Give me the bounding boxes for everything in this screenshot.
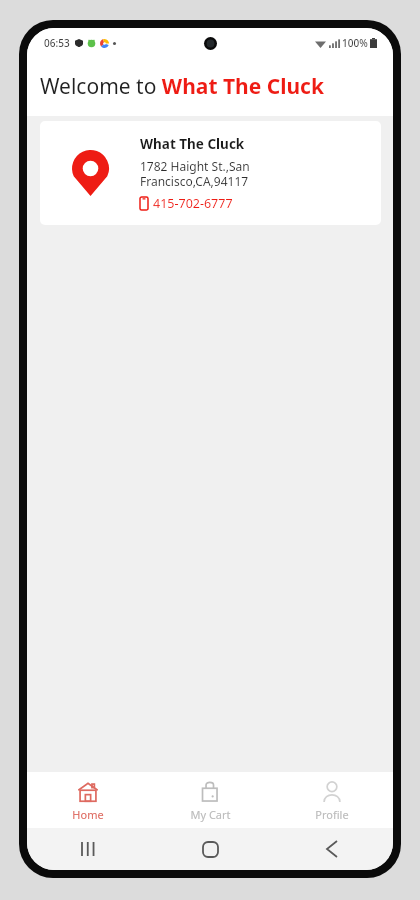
button[interactable]: 415-702-6777 [140,195,233,212]
button[interactable]: What The Cluck [40,121,381,225]
other: Recents [81,842,96,856]
other: Home [77,781,99,803]
staticText: My Cart [190,807,231,822]
staticText: 1782 Haight St.,San Francisco,CA,94117 [140,158,250,189]
other: Profile [321,781,343,803]
other: Back [327,841,337,857]
staticText: Welcome to What The Cluck [40,72,324,101]
other: My Cart [199,781,221,803]
staticText: What The Cluck [140,135,245,153]
button[interactable]: Profile [271,772,393,828]
button[interactable]: Home [27,772,149,828]
other: Home [203,842,218,857]
staticText: Profile [315,807,349,822]
button[interactable]: Home [149,828,271,870]
button[interactable]: My Cart [149,772,271,828]
button[interactable]: Back [271,828,393,870]
button[interactable]: Recents [27,828,149,870]
staticText: 06:53 [44,36,70,50]
staticText: Home [72,807,104,822]
staticText: 100% [342,36,368,50]
staticText: 415-702-6777 [153,195,233,212]
